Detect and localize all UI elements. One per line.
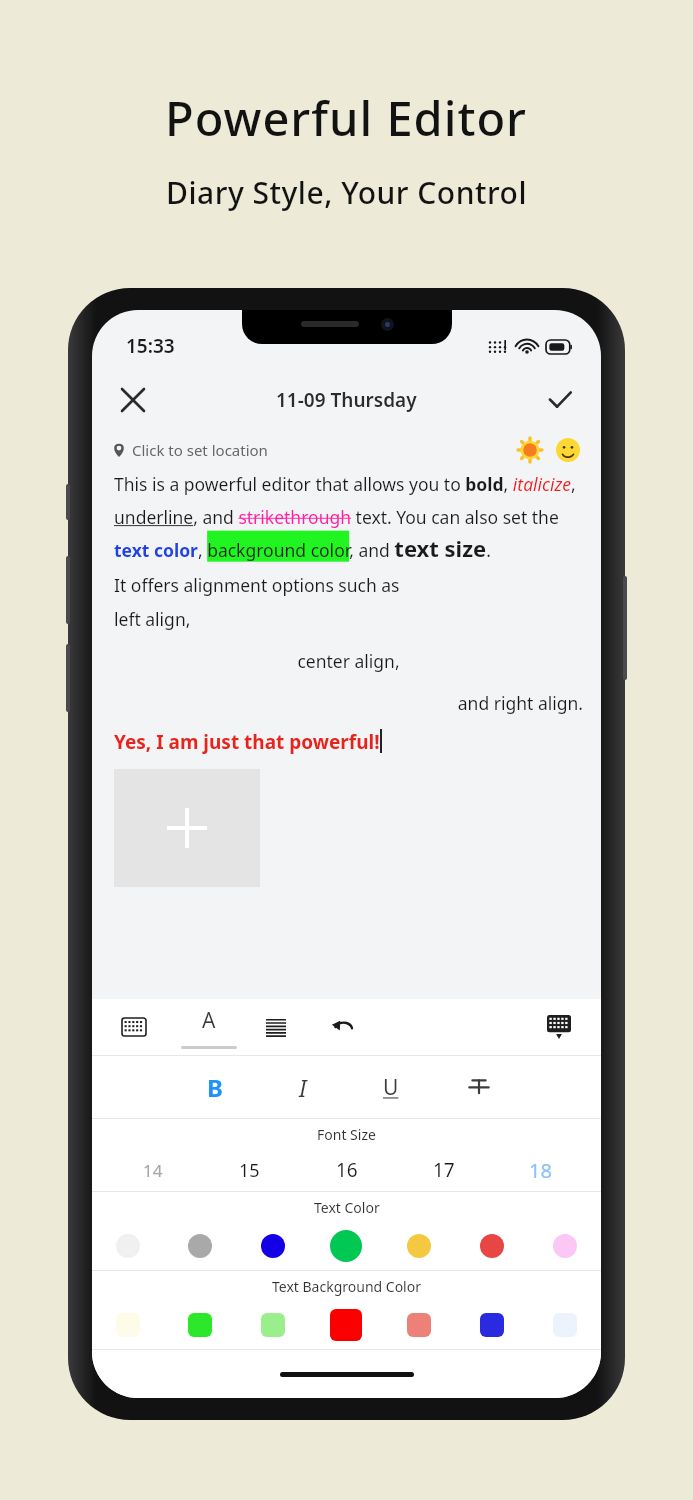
button[interactable]: 18 bbox=[492, 1149, 589, 1191]
staticText: 17 bbox=[433, 1157, 455, 1183]
staticText: and right align. bbox=[114, 691, 583, 715]
button[interactable]: Click to set location bbox=[112, 436, 268, 464]
staticText: Text Background Color bbox=[272, 1277, 421, 1296]
staticText: Click to set location bbox=[132, 440, 268, 460]
button[interactable]: Text color 1 bbox=[164, 1222, 236, 1270]
staticText: This is a powerful editor that allows yo… bbox=[114, 472, 583, 563]
button[interactable]: 16 bbox=[298, 1149, 395, 1191]
button[interactable]: Text color 2 bbox=[236, 1222, 309, 1270]
button[interactable]: Background color 6 bbox=[528, 1301, 601, 1349]
button[interactable]: Background color 2 bbox=[236, 1301, 309, 1349]
button[interactable]: Close bbox=[110, 377, 156, 423]
staticText: Font Size bbox=[317, 1125, 376, 1144]
staticText: Powerful Editor bbox=[165, 86, 528, 150]
button[interactable]: Text color 6 bbox=[528, 1222, 601, 1270]
staticText: Diary Style, Your Control bbox=[166, 172, 528, 213]
button[interactable]: 14 bbox=[104, 1149, 201, 1191]
staticText: 15:33 bbox=[126, 333, 175, 359]
staticText: 11-09 Thursday bbox=[276, 387, 417, 413]
button[interactable]: Alignment bbox=[256, 1002, 296, 1052]
staticText: 18 bbox=[529, 1157, 552, 1184]
button[interactable]: Text color 0 bbox=[92, 1222, 164, 1270]
staticText: It offers alignment options such as bbox=[114, 573, 400, 597]
staticText: 14 bbox=[143, 1159, 163, 1182]
button[interactable]: Strikethrough bbox=[457, 1061, 501, 1113]
staticText: center align, bbox=[114, 649, 583, 673]
button[interactable]: Hide keyboard bbox=[539, 1002, 579, 1052]
button[interactable]: Add image bbox=[114, 769, 260, 887]
button[interactable]: Text color 3 bbox=[309, 1222, 382, 1270]
button[interactable]: Text color 5 bbox=[455, 1222, 528, 1270]
button[interactable]: Text format bbox=[180, 999, 238, 1055]
staticText: 16 bbox=[336, 1157, 358, 1183]
button[interactable]: Background color 0 bbox=[92, 1301, 164, 1349]
button[interactable]: Weather bbox=[517, 437, 543, 463]
button[interactable]: Undo bbox=[322, 1002, 362, 1052]
staticText: A bbox=[202, 1006, 216, 1035]
staticText: Yes, I am just that powerful! bbox=[114, 729, 380, 755]
staticText: left align, bbox=[114, 607, 191, 631]
button[interactable]: 17 bbox=[395, 1149, 492, 1191]
button[interactable]: Keyboard bbox=[114, 1002, 154, 1052]
button[interactable]: Background color 1 bbox=[164, 1301, 236, 1349]
staticText: B bbox=[207, 1071, 223, 1104]
staticText: 15 bbox=[239, 1158, 260, 1183]
staticText: I bbox=[299, 1072, 307, 1103]
button[interactable]: Italic bbox=[281, 1061, 325, 1113]
button[interactable]: Background color 4 bbox=[382, 1301, 455, 1349]
button[interactable]: Text color 4 bbox=[382, 1222, 455, 1270]
button[interactable]: B bbox=[193, 1061, 237, 1113]
button[interactable]: Background color 3 bbox=[309, 1301, 382, 1349]
staticText: U bbox=[383, 1073, 399, 1102]
button[interactable]: Save bbox=[537, 377, 583, 423]
button[interactable]: 15 bbox=[201, 1149, 298, 1191]
button[interactable]: Underline bbox=[369, 1061, 413, 1113]
staticText: Text Color bbox=[314, 1198, 380, 1217]
button[interactable]: Mood bbox=[555, 437, 581, 463]
button[interactable]: Background color 5 bbox=[455, 1301, 528, 1349]
